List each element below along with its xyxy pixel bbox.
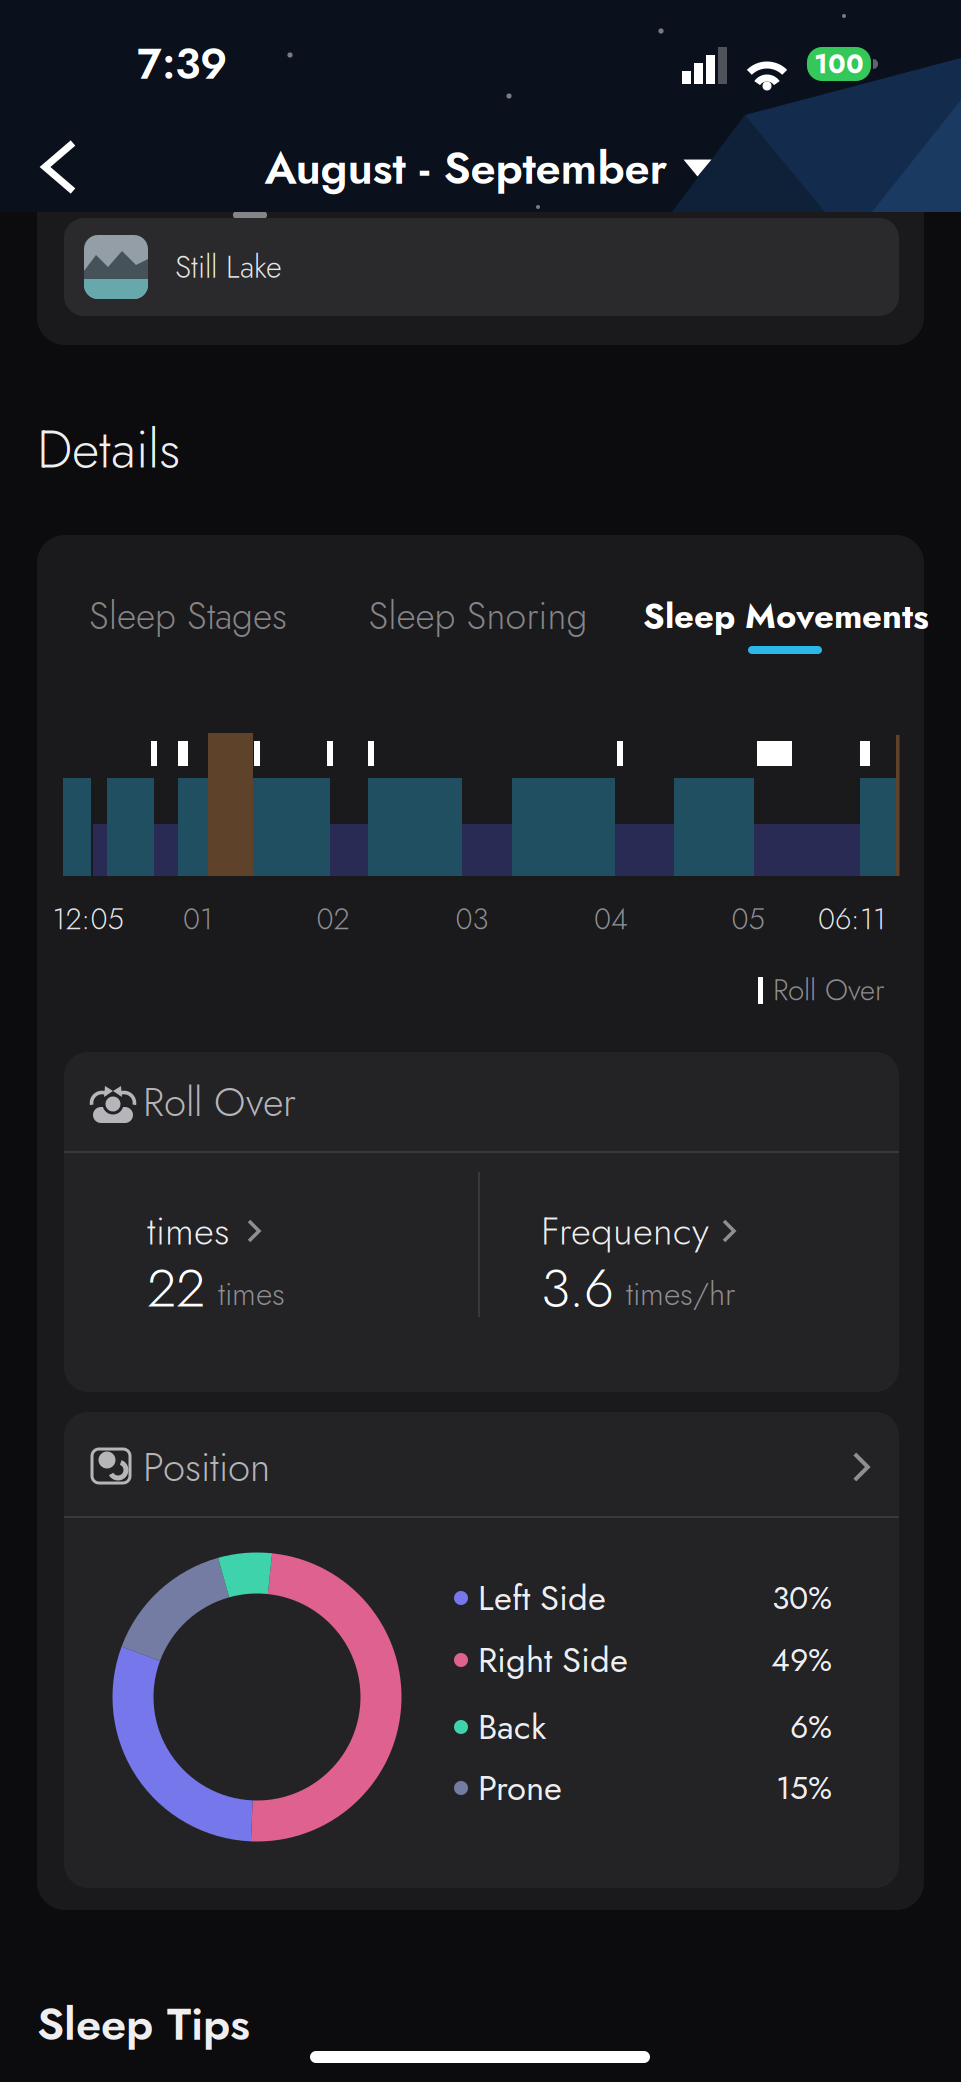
staticText: 30%: [772, 1575, 832, 1621]
staticText: 06:11: [818, 898, 886, 940]
staticText: 49%: [771, 1637, 832, 1683]
button[interactable]: Position: [64, 1412, 899, 1516]
button[interactable]: Sleep Stages: [48, 591, 328, 641]
staticText: August - September: [264, 135, 667, 201]
staticText: 3.6: [541, 1249, 614, 1327]
staticText: Sleep Tips: [37, 1991, 250, 2057]
button[interactable]: times: [150, 1205, 450, 1323]
staticText: Left Side: [478, 1573, 606, 1623]
staticText: Prone: [478, 1763, 562, 1813]
staticText: Sleep Snoring: [368, 589, 587, 643]
staticText: Roll Over: [143, 1073, 296, 1131]
button[interactable]: Sleep Snoring: [338, 591, 618, 641]
staticText: Still Lake: [175, 245, 282, 289]
button[interactable]: Sleep Movements: [626, 591, 946, 641]
button[interactable]: August - September: [264, 138, 711, 198]
button[interactable]: Still Lake: [64, 218, 899, 316]
button[interactable]: Back: [29, 139, 89, 195]
button[interactable]: Frequency: [540, 1205, 860, 1323]
staticText: 04: [594, 898, 628, 940]
staticText: Sleep Stages: [89, 589, 287, 643]
staticText: times: [147, 1203, 230, 1259]
staticText: 7:39: [137, 33, 227, 95]
staticText: Position: [143, 1438, 270, 1496]
staticText: Roll Over: [773, 969, 884, 1011]
staticText: 15%: [776, 1765, 832, 1811]
staticText: Right Side: [478, 1635, 628, 1685]
staticText: Frequency: [541, 1203, 709, 1259]
staticText: 05: [731, 898, 764, 940]
staticText: 03: [455, 898, 488, 940]
staticText: Back: [478, 1702, 546, 1752]
staticText: Sleep Movements: [643, 591, 929, 641]
staticText: 12:05: [52, 898, 123, 940]
staticText: 02: [316, 898, 349, 940]
staticText: 01: [183, 898, 213, 940]
staticText: 22: [147, 1249, 205, 1327]
staticText: 6%: [790, 1704, 832, 1750]
staticText: times/hr: [626, 1271, 735, 1317]
staticText: times: [218, 1271, 285, 1317]
staticText: Details: [37, 410, 180, 488]
staticText: 100: [814, 45, 864, 83]
